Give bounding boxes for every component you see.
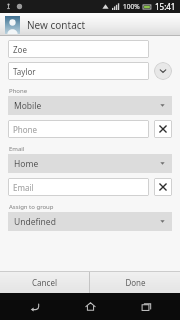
staticText: Assign to group (9, 203, 54, 211)
staticText: Email (13, 182, 34, 193)
staticText: Home (14, 158, 39, 170)
staticText: Zoe (13, 44, 27, 55)
staticText: Taylor (13, 66, 36, 77)
staticText: 15:41 (155, 1, 176, 12)
button[interactable]: Back (12, 293, 56, 320)
button[interactable]: Undefined (8, 212, 172, 231)
staticText: Cancel (32, 277, 57, 288)
staticText: Undefined (14, 216, 56, 228)
staticText: Mobile (14, 100, 42, 112)
staticText: 100% (123, 2, 140, 11)
staticText: Phone (9, 87, 28, 95)
staticText: New contact (27, 18, 86, 32)
button[interactable]: Done (90, 272, 180, 293)
button[interactable]: Phone (8, 120, 149, 138)
button[interactable]: Expand name fields (154, 62, 172, 80)
button[interactable]: Home (8, 154, 172, 173)
button[interactable]: Cancel (0, 272, 89, 293)
button[interactable]: Delete (154, 178, 172, 196)
button[interactable]: Email (8, 178, 149, 196)
staticText: Done (125, 277, 146, 288)
button[interactable]: Delete (154, 120, 172, 138)
button[interactable]: Taylor (8, 62, 149, 80)
button[interactable]: Home (68, 293, 112, 320)
staticText: Phone (13, 124, 38, 135)
button[interactable]: Mobile (8, 96, 172, 115)
staticText: Email (9, 145, 25, 153)
button[interactable]: Zoe (8, 40, 149, 58)
button[interactable]: Recent apps (124, 293, 168, 320)
